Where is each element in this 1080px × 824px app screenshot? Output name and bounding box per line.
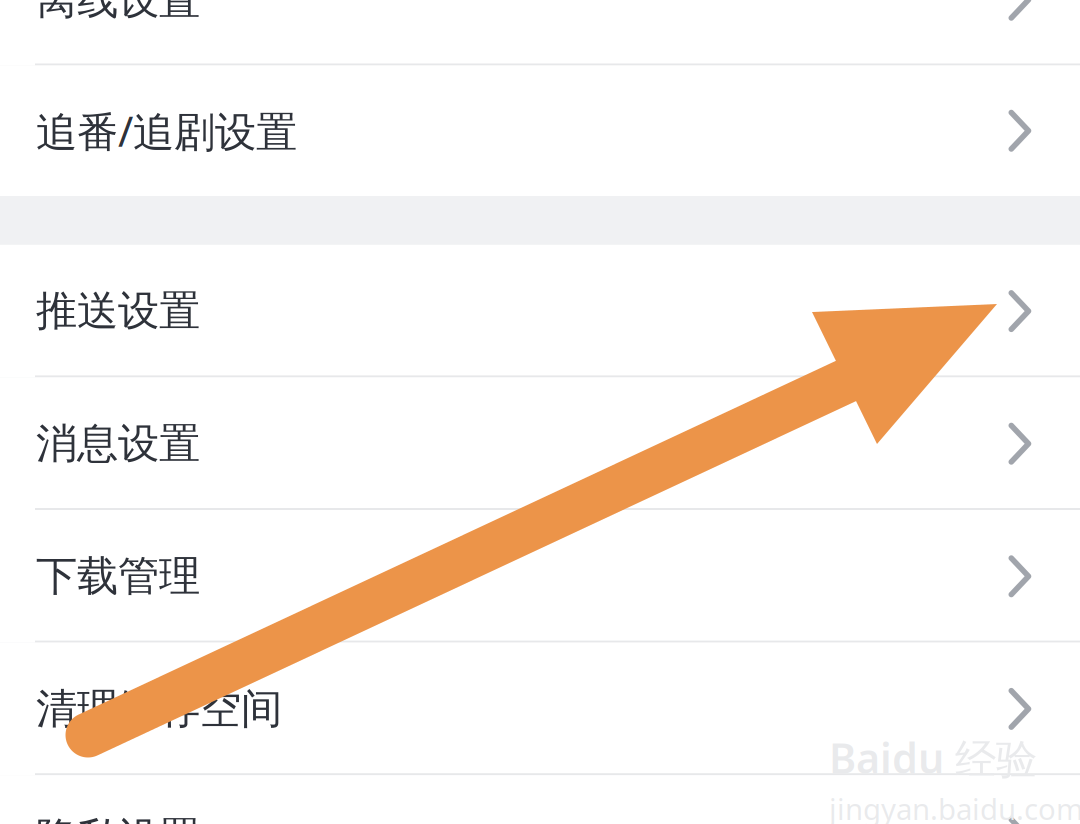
button[interactable]: 离线设置 (0, 0, 1080, 65)
button[interactable]: 隐私设置 (0, 775, 1080, 824)
staticText: 下载管理 (36, 551, 200, 602)
button[interactable]: 下载管理 (0, 510, 1080, 643)
staticText: 清理缓存空间 (36, 683, 282, 734)
staticText: 消息设置 (36, 418, 200, 469)
staticText: 追番/追剧设置 (36, 103, 297, 158)
button[interactable]: 追番/追剧设置 (0, 65, 1080, 196)
staticText: 隐私设置 (36, 812, 200, 824)
button[interactable]: 消息设置 (0, 377, 1080, 510)
staticText: 推送设置 (36, 286, 200, 336)
button[interactable]: 推送设置 (0, 245, 1080, 377)
staticText: jingyan.baidu.com (829, 789, 1080, 824)
button[interactable]: 清理缓存空间 (0, 643, 1080, 775)
staticText: 离线设置 (36, 0, 200, 25)
staticText: Baidu 经验 (829, 730, 1037, 785)
